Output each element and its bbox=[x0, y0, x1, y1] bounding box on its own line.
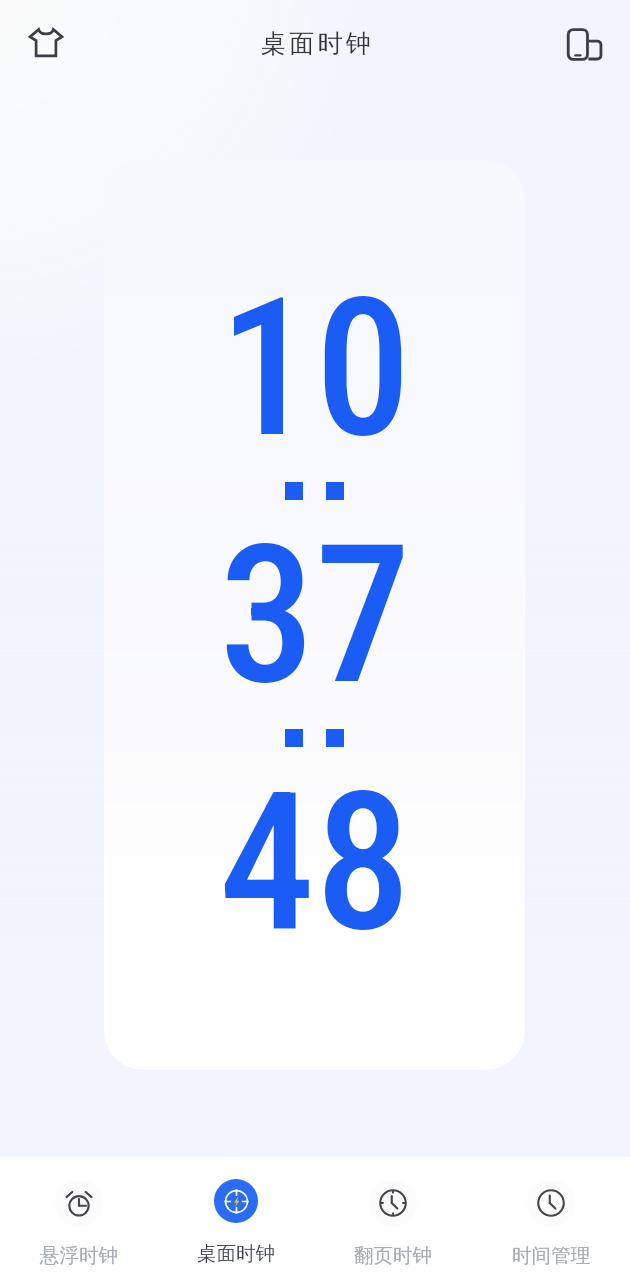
staticText: 悬浮时钟 bbox=[40, 1243, 118, 1268]
staticText: 桌面时钟 bbox=[197, 1241, 275, 1266]
staticText: 桌面时钟 bbox=[261, 28, 374, 59]
button[interactable]: 桌面时钟 bbox=[157, 1157, 314, 1266]
button[interactable]: 10 bbox=[104, 160, 525, 1070]
staticText: 48 bbox=[219, 750, 411, 975]
staticText: 10 bbox=[219, 256, 411, 481]
button[interactable]: 时间管理 bbox=[472, 1157, 630, 1268]
button[interactable]: Rotate screen bbox=[554, 14, 614, 74]
button[interactable]: Theme bbox=[16, 13, 76, 73]
staticText: 37 bbox=[219, 503, 411, 728]
button[interactable]: 翻页时钟 bbox=[314, 1157, 472, 1268]
staticText: 翻页时钟 bbox=[354, 1243, 432, 1268]
staticText: 时间管理 bbox=[512, 1243, 590, 1268]
button[interactable]: 悬浮时钟 bbox=[0, 1157, 157, 1268]
